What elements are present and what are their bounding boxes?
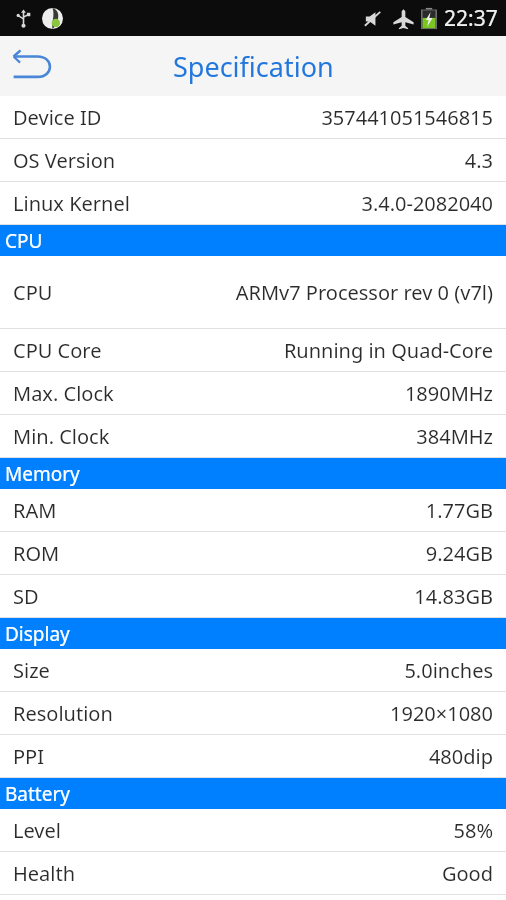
staticText: Level [13,817,61,844]
button[interactable]: Min. Clock [0,415,506,457]
staticText: 480dip [428,743,493,770]
staticText: 5.0inches [404,657,493,684]
button[interactable]: RAM [0,489,506,531]
button[interactable]: OS Version [0,139,506,181]
button[interactable]: Back [0,36,64,96]
staticText: 22:37 [444,4,498,33]
button[interactable]: CPU [0,256,506,328]
button[interactable]: Health [0,852,506,894]
staticText: 1890MHz [404,380,493,407]
staticText: Max. Clock [13,380,114,407]
staticText: 357441051546815 [321,104,493,131]
staticText: Running in Quad-Core [283,337,493,364]
staticText: RAM [13,497,57,524]
staticText: 1.77GB [425,497,493,524]
button[interactable]: CPU [0,225,506,256]
button[interactable]: Level [0,809,506,851]
staticText: CPU Core [13,337,102,364]
button[interactable]: Battery [0,778,506,809]
staticText: OS Version [13,147,116,174]
staticText: Health [13,860,76,887]
button[interactable]: PPI [0,735,506,777]
staticText: Battery [5,781,70,807]
button[interactable]: Display [0,618,506,649]
button[interactable]: CPU Core [0,329,506,371]
staticText: 1920×1080 [390,700,493,727]
staticText: 9.24GB [425,540,493,567]
button[interactable]: Linux Kernel [0,182,506,224]
staticText: Size [13,657,50,684]
staticText: ARMv7 Processor rev 0 (v7l) [235,279,493,306]
staticText: PPI [13,743,44,770]
button[interactable]: Max. Clock [0,372,506,414]
staticText: 4.3 [464,147,493,174]
staticText: CPU [13,279,53,306]
staticText: Specification [173,48,334,85]
staticText: Memory [5,461,80,487]
button[interactable]: SD [0,575,506,617]
staticText: Linux Kernel [13,190,130,217]
staticText: Min. Clock [13,423,110,450]
staticText: Display [5,621,70,647]
button[interactable]: Size [0,649,506,691]
staticText: 58% [453,817,493,844]
staticText: Resolution [13,700,113,727]
staticText: 3.4.0-2082040 [361,190,493,217]
staticText: Good [441,860,493,887]
staticText: SD [13,583,39,610]
staticText: Device ID [13,104,102,131]
button[interactable]: Device ID [0,96,506,138]
staticText: ROM [13,540,60,567]
staticText: 14.83GB [414,583,493,610]
staticText: CPU [5,228,43,254]
button[interactable]: Resolution [0,692,506,734]
staticText: 384MHz [416,423,493,450]
button[interactable]: Memory [0,458,506,489]
button[interactable]: ROM [0,532,506,574]
